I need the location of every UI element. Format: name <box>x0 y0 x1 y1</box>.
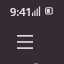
button[interactable]: Menu <box>8 26 42 60</box>
staticText: 9:41 <box>10 4 32 19</box>
